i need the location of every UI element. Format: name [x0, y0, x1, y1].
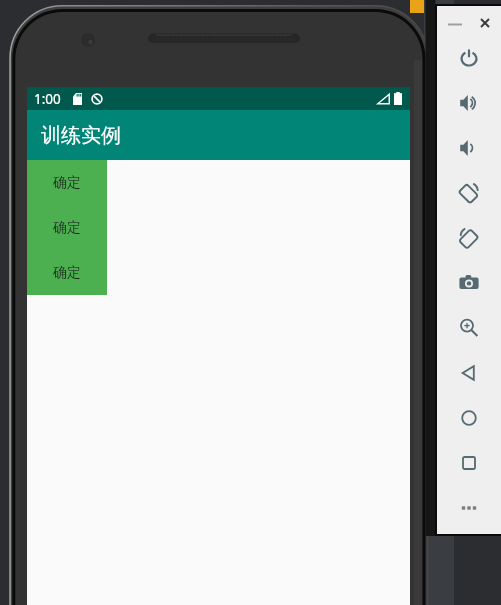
button[interactable]: Rotate left	[437, 170, 501, 215]
button[interactable]: Zoom	[437, 305, 501, 350]
staticText: 训练实例	[41, 123, 121, 148]
staticText: 确定	[53, 219, 81, 237]
staticText: 确定	[53, 264, 81, 282]
button[interactable]: Volume down	[437, 125, 501, 170]
button[interactable]: Minimize	[444, 13, 466, 33]
button[interactable]: Overview	[437, 440, 501, 485]
button[interactable]: 确定	[27, 250, 107, 295]
staticText: 确定	[53, 174, 81, 192]
button[interactable]: 确定	[27, 205, 107, 250]
button[interactable]: Screenshot	[437, 260, 501, 305]
button[interactable]: More options	[437, 485, 501, 530]
button[interactable]: 确定	[27, 160, 107, 205]
button[interactable]: Close	[474, 13, 496, 33]
button[interactable]: Back	[437, 350, 501, 395]
button[interactable]: Home	[437, 395, 501, 440]
button[interactable]: Power	[437, 35, 501, 80]
button[interactable]: Volume up	[437, 80, 501, 125]
staticText: 1:00	[34, 90, 61, 108]
button[interactable]: Rotate right	[437, 215, 501, 260]
